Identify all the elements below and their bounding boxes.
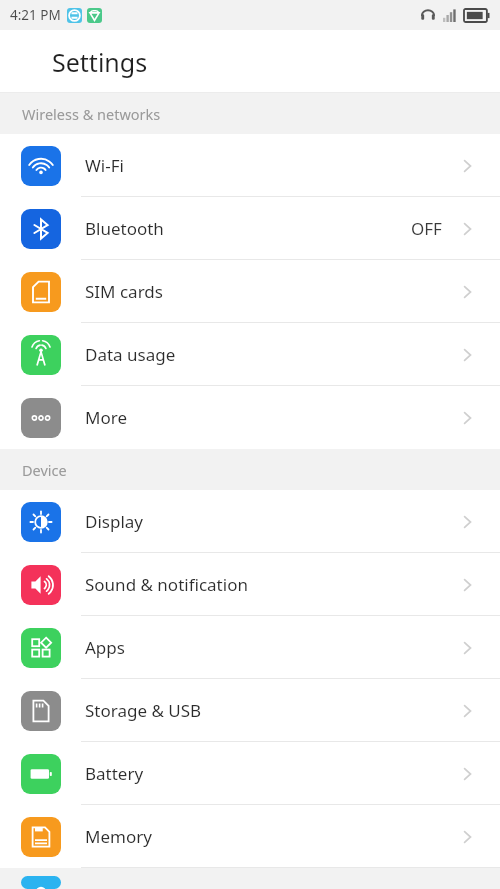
staticText: Sound & notification — [85, 573, 248, 596]
staticText: Data usage — [85, 343, 176, 366]
button[interactable]: Wi-Fi — [0, 134, 500, 197]
staticText: Display — [85, 510, 143, 533]
staticText: Apps — [85, 636, 125, 659]
button[interactable] — [0, 868, 500, 889]
button[interactable]: Memory — [0, 805, 500, 868]
button[interactable]: Sound & notification — [0, 553, 500, 616]
staticText: Storage & USB — [85, 699, 202, 722]
button[interactable]: More — [0, 386, 500, 449]
button[interactable]: Bluetooth — [0, 197, 500, 260]
staticText: Device — [22, 460, 67, 480]
staticText: More — [85, 406, 127, 429]
button[interactable]: Display — [0, 490, 500, 553]
staticText: 4:21 PM — [10, 6, 61, 24]
button[interactable]: Data usage — [0, 323, 500, 386]
staticText: OFF — [411, 217, 442, 240]
button[interactable]: Apps — [0, 616, 500, 679]
button[interactable]: Battery — [0, 742, 500, 805]
staticText: Memory — [85, 825, 152, 848]
staticText: Bluetooth — [85, 217, 164, 240]
staticText: Battery — [85, 762, 144, 785]
staticText: Wi-Fi — [85, 154, 124, 177]
staticText: Wireless & networks — [22, 104, 161, 124]
button[interactable]: SIM cards — [0, 260, 500, 323]
staticText: Settings — [52, 45, 148, 79]
button[interactable]: Storage & USB — [0, 679, 500, 742]
staticText: SIM cards — [85, 280, 163, 303]
